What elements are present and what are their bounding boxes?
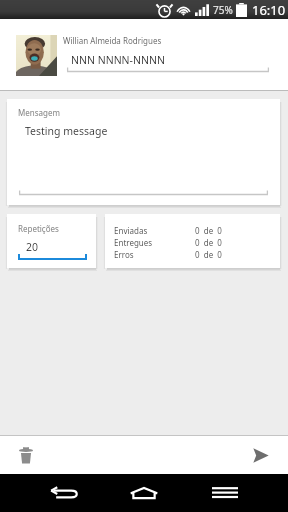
button[interactable]: Send: [235, 436, 287, 474]
staticText: 0 de 0: [195, 225, 222, 236]
staticText: Entregues: [114, 237, 153, 248]
staticText: Repetições: [18, 223, 59, 234]
staticText: 20: [26, 240, 39, 254]
staticText: Testing message: [25, 124, 108, 138]
staticText: 0 de 0: [195, 249, 222, 260]
staticText: Mensagem: [18, 107, 60, 118]
staticText: Willian Almeida Rodrigues: [63, 35, 162, 46]
button[interactable]: Back: [32, 474, 96, 512]
staticText: 0 de 0: [195, 237, 222, 248]
staticText: 75%: [213, 3, 233, 17]
button[interactable]: Home: [112, 474, 176, 512]
staticText: Erros: [114, 249, 134, 260]
staticText: NNN NNNN-NNNN: [71, 53, 165, 67]
button[interactable]: Delete: [0, 436, 52, 474]
button[interactable]: Recent apps: [193, 474, 257, 512]
staticText: 16:10: [252, 1, 286, 19]
staticText: Enviadas: [114, 225, 148, 236]
